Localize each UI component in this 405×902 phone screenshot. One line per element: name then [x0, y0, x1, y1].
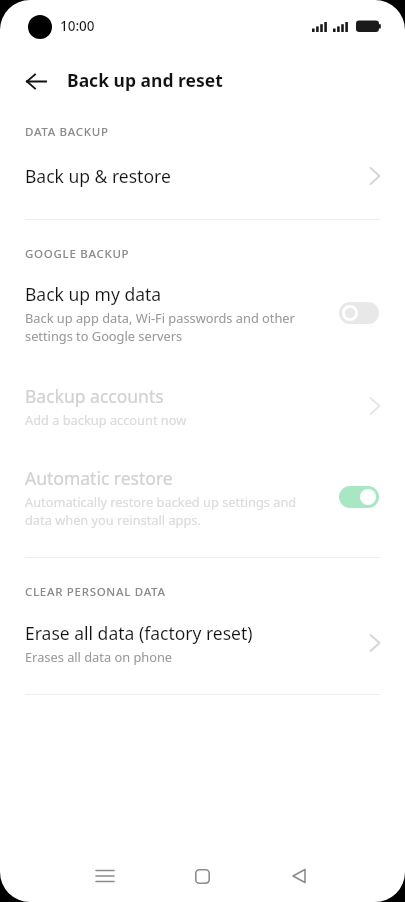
- staticText: Automatic restore: [25, 466, 173, 490]
- staticText: Back up & restore: [25, 164, 171, 188]
- staticText: Erase all data (factory reset): [25, 621, 253, 645]
- staticText: Add a backup account now: [25, 411, 187, 428]
- button[interactable]: Backup accounts: [0, 380, 405, 432]
- button[interactable]: Back: [279, 856, 319, 896]
- button[interactable]: Erase all data (factory reset): [0, 617, 405, 669]
- button[interactable]: Automatic restore: [0, 462, 405, 532]
- button[interactable]: Automatic restore toggle, on: [339, 486, 379, 508]
- button[interactable]: Back up & restore: [0, 150, 405, 202]
- staticText: Backup accounts: [25, 384, 164, 408]
- staticText: GOOGLE BACKUP: [25, 246, 130, 262]
- staticText: DATA BACKUP: [25, 124, 109, 140]
- staticText: 10:00: [60, 17, 95, 35]
- staticText: Automatically restore backed up settings…: [25, 493, 297, 529]
- button[interactable]: Back: [18, 63, 54, 99]
- staticText: CLEAR PERSONAL DATA: [25, 584, 166, 600]
- staticText: Back up app data, Wi-Fi passwords and ot…: [25, 309, 295, 345]
- staticText: Back up and reset: [67, 68, 223, 92]
- staticText: Erases all data on phone: [25, 648, 173, 665]
- button[interactable]: Back up my data toggle, off: [339, 302, 379, 324]
- button[interactable]: Back up my data: [0, 278, 405, 348]
- button[interactable]: Home: [182, 856, 222, 896]
- button[interactable]: Recent apps: [85, 856, 125, 896]
- staticText: Back up my data: [25, 282, 162, 306]
